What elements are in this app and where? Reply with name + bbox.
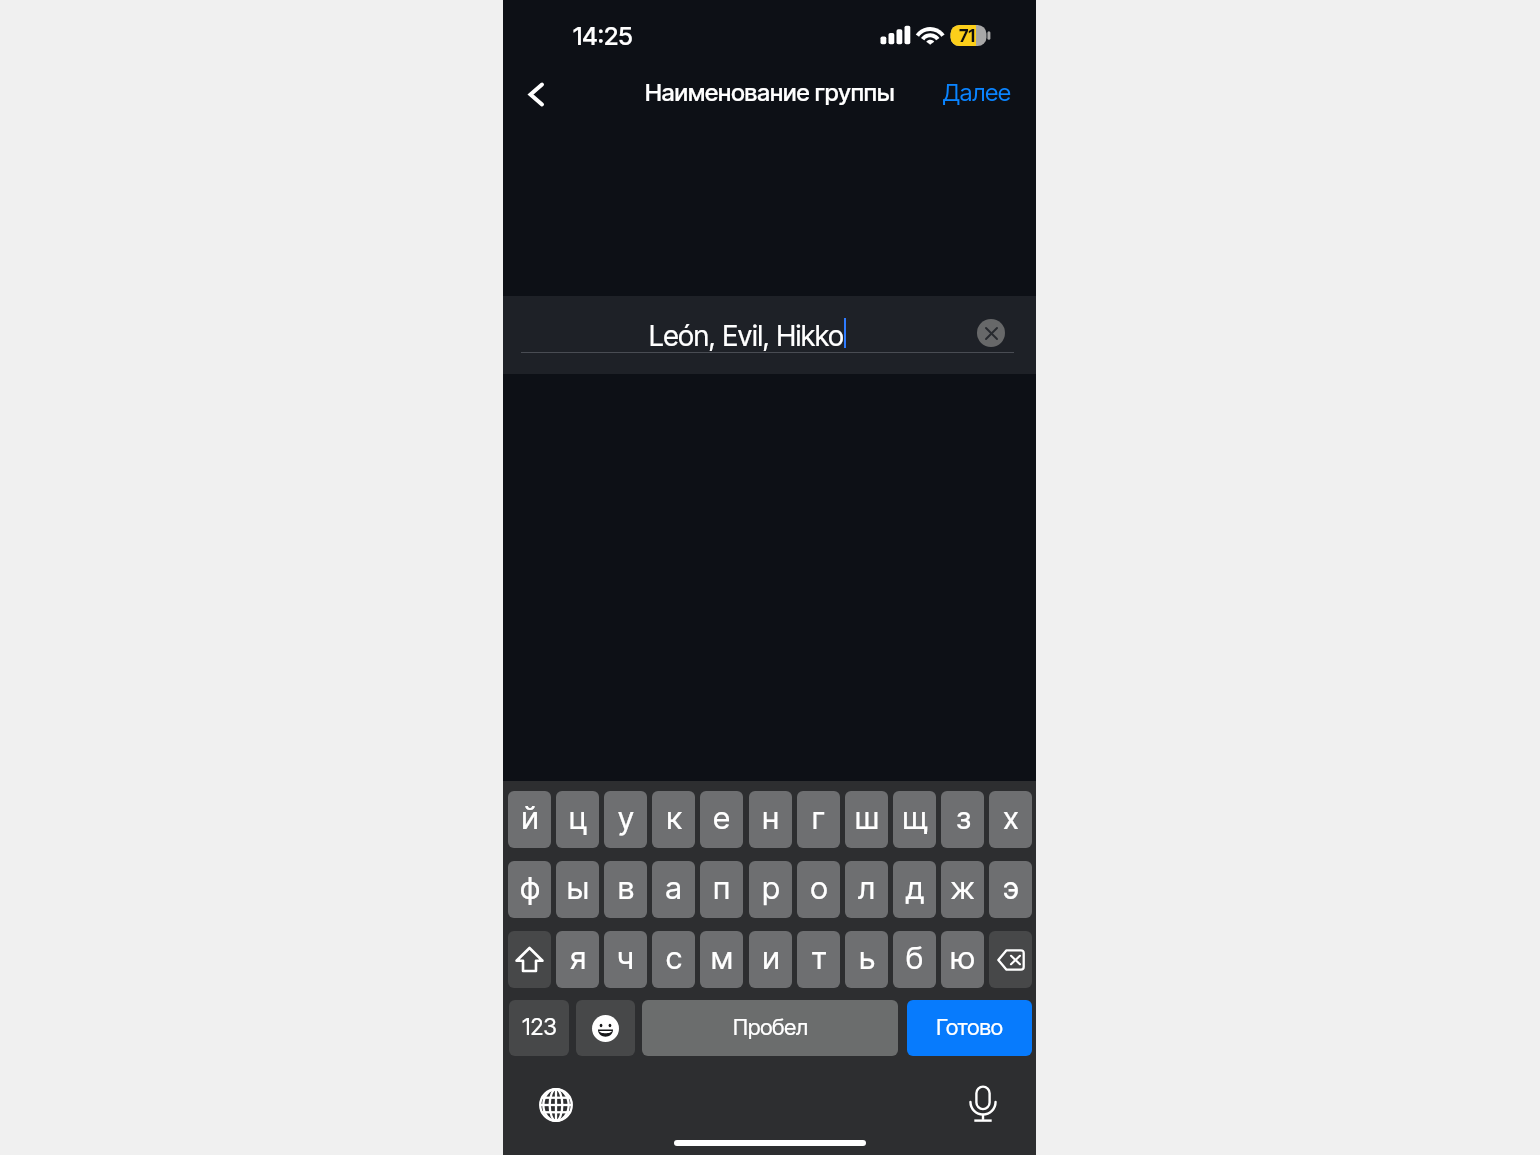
button[interactable]: ф [508,861,551,918]
staticText: щ [902,799,928,837]
button[interactable]: ж [941,861,984,918]
button[interactable]: з [941,791,984,848]
button[interactable]: й [508,791,551,848]
staticText: и [762,939,780,977]
button[interactable]: л [845,861,888,918]
staticText: 14:25 [573,21,633,51]
staticText: у [618,799,634,837]
staticText: т [811,939,827,977]
button[interactable]: и [749,931,792,988]
staticText: х [1003,799,1019,837]
button[interactable]: Shift [508,931,551,988]
button[interactable]: м [700,931,743,988]
button[interactable]: Change keyboard language [536,1085,576,1125]
button[interactable]: ц [556,791,599,848]
button[interactable]: Далее [927,68,1027,118]
button[interactable]: х [989,791,1032,848]
staticText: ч [617,939,634,977]
staticText: я [570,939,586,977]
staticText: о [810,869,828,907]
staticText: ы [567,869,589,907]
staticText: Наименование группы [645,78,895,107]
staticText: л [858,869,875,907]
staticText: м [711,939,733,977]
staticText: н [762,799,779,837]
staticText: в [618,869,634,907]
staticText: б [906,939,923,977]
staticText: е [713,799,730,837]
button[interactable]: Clear text [977,319,1005,347]
staticText: ю [951,939,975,977]
button[interactable]: Emoji keyboard [576,1000,635,1056]
button[interactable]: ь [845,931,888,988]
button[interactable]: п [700,861,743,918]
staticText: э [1003,869,1019,907]
staticText: п [713,869,730,907]
staticText: ф [520,869,540,907]
staticText: г [812,799,825,837]
button[interactable]: Backspace [989,931,1032,988]
staticText: Пробел [733,1014,808,1041]
button[interactable]: т [797,931,840,988]
staticText: з [956,799,970,837]
button[interactable]: к [652,791,695,848]
staticText: к [666,799,682,837]
button[interactable]: д [893,861,936,918]
staticText: ь [859,939,875,977]
button[interactable]: в [604,861,647,918]
staticText: ж [950,869,975,907]
staticText: 71 [959,26,976,47]
button[interactable]: р [749,861,792,918]
staticText: д [906,869,924,907]
button[interactable]: я [556,931,599,988]
button[interactable]: ш [845,791,888,848]
button[interactable]: 123 [509,1000,569,1056]
button[interactable]: ч [604,931,647,988]
button[interactable]: с [652,931,695,988]
staticText: 123 [522,1013,557,1041]
button[interactable]: о [797,861,840,918]
button[interactable]: н [749,791,792,848]
button[interactable]: у [604,791,647,848]
staticText: Готово [936,1014,1003,1041]
button[interactable]: Back [511,67,565,121]
button[interactable]: Пробел [642,1000,898,1056]
staticText: й [521,799,539,837]
button[interactable]: б [893,931,936,988]
button[interactable]: э [989,861,1032,918]
button[interactable]: Dictation [963,1084,1003,1124]
button[interactable]: ы [556,861,599,918]
staticText: ц [569,799,587,837]
staticText: р [762,869,780,907]
staticText: León, Evil, Hikko [649,319,844,353]
button[interactable]: щ [893,791,936,848]
button[interactable]: г [797,791,840,848]
button[interactable]: е [700,791,743,848]
button[interactable]: а [652,861,695,918]
staticText: Далее [943,78,1011,107]
button[interactable]: Готово [907,1000,1032,1056]
staticText: ш [855,799,879,837]
staticText: а [665,869,682,907]
staticText: с [666,939,682,977]
button[interactable]: ю [941,931,984,988]
